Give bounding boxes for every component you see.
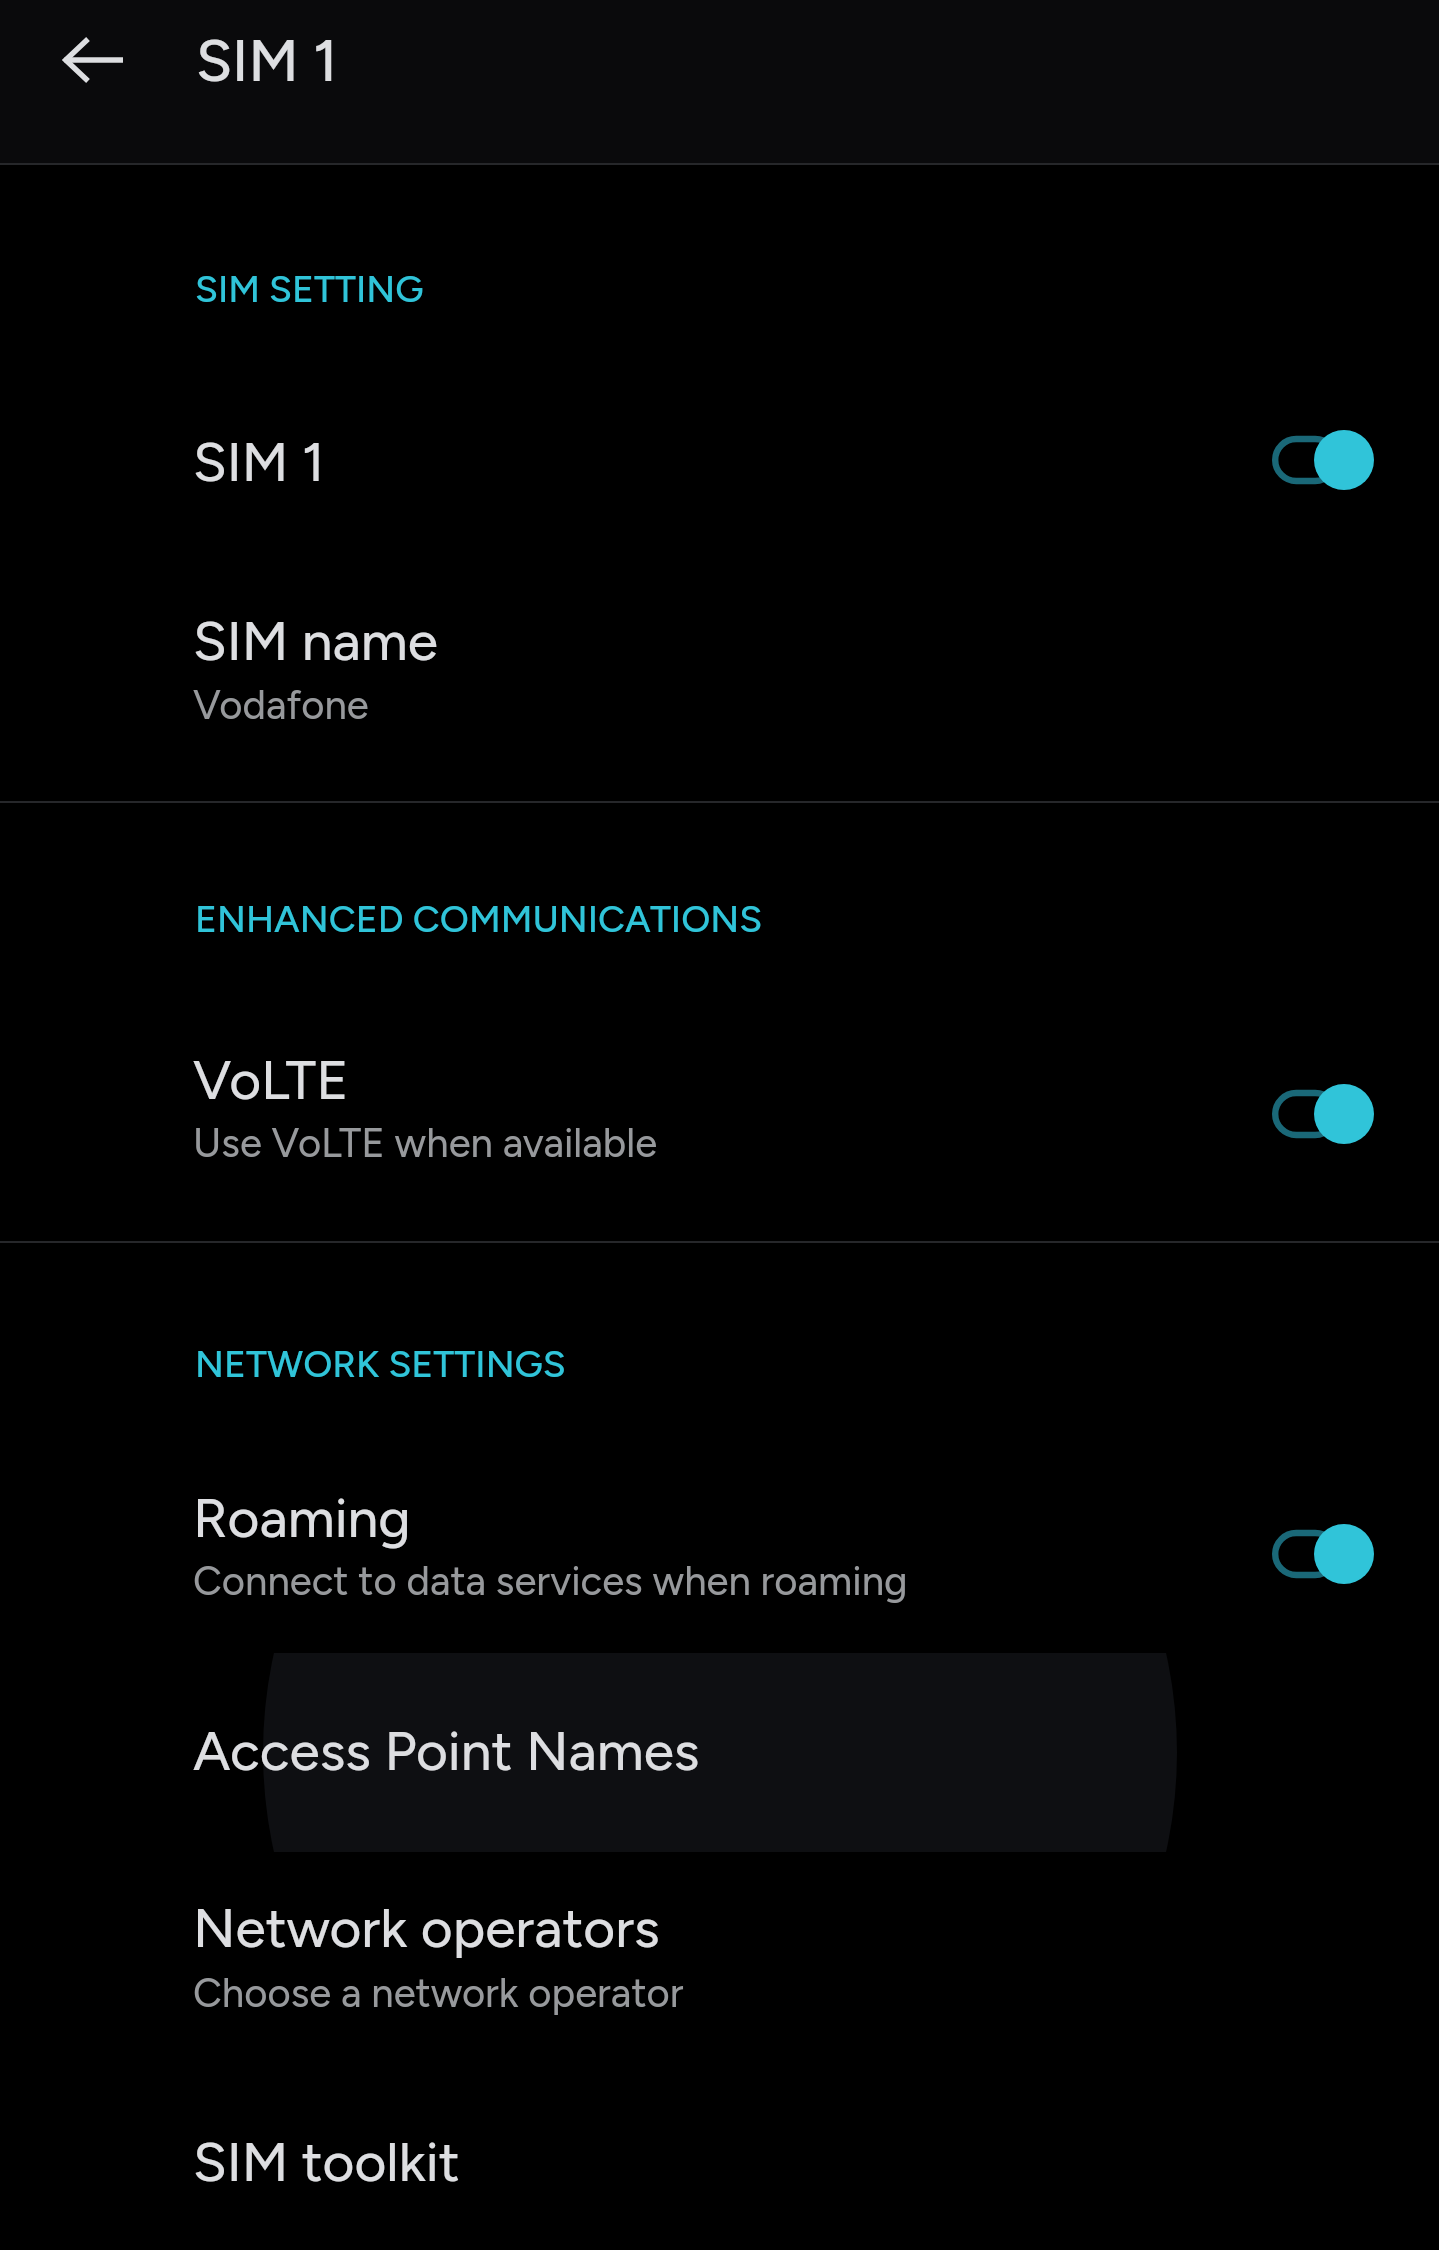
staticText: Roaming: [193, 1485, 411, 1551]
staticText: VoLTE: [193, 1047, 349, 1113]
staticText: Use VoLTE when available: [193, 1119, 658, 1167]
staticText: Access Point Names: [193, 1718, 700, 1784]
button[interactable]: Access Point Names: [0, 1653, 1439, 1852]
staticText: NETWORK SETTINGS: [195, 1341, 566, 1386]
button[interactable]: VoLTE: [0, 980, 1439, 1241]
staticText: Choose a network operator: [193, 1969, 684, 2017]
staticText: SIM 1: [193, 429, 325, 495]
staticText: SIM 1: [196, 25, 338, 96]
staticText: Network operators: [193, 1895, 660, 1961]
button[interactable]: SIM name: [0, 530, 1439, 801]
staticText: SIM name: [193, 608, 438, 674]
staticText: SIM SETTING: [195, 266, 424, 311]
staticText: Connect to data services when roaming: [193, 1557, 908, 1605]
button[interactable]: Toggle Roaming: [1262, 1504, 1386, 1604]
staticText: Vodafone: [193, 681, 369, 729]
staticText: ENHANCED COMMUNICATIONS: [195, 896, 763, 941]
button[interactable]: Navigate up: [39, 6, 147, 114]
button[interactable]: Network operators: [0, 1852, 1439, 2062]
button[interactable]: SIM toolkit: [0, 2062, 1439, 2250]
button[interactable]: Toggle SIM 1: [1262, 410, 1386, 510]
staticText: SIM toolkit: [193, 2129, 460, 2195]
button[interactable]: Toggle VoLTE: [1262, 1064, 1386, 1164]
button[interactable]: Roaming: [0, 1420, 1439, 1653]
button[interactable]: SIM 1: [0, 336, 1439, 530]
